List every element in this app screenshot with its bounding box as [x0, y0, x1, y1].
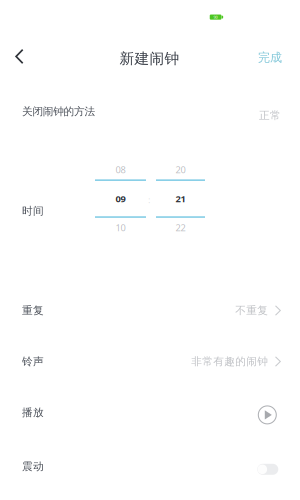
staticText: 20 — [175, 163, 185, 176]
button[interactable]: 关闭闹钟的方法 — [0, 86, 300, 136]
button[interactable]: 震动 — [0, 441, 300, 491]
button[interactable]: 重复 — [0, 285, 300, 335]
staticText: 不重复 — [235, 304, 268, 317]
staticText: : — [148, 193, 151, 206]
staticText: 重复 — [22, 304, 44, 317]
staticText: 震动 — [22, 460, 44, 473]
staticText: 播放 — [22, 406, 44, 419]
staticText: 完成 — [258, 50, 282, 65]
button[interactable]: 返回 — [2, 43, 36, 69]
button[interactable]: 播放 — [0, 387, 300, 437]
staticText: 正常 — [259, 109, 281, 122]
staticText: 10 — [115, 221, 125, 234]
staticText: 新建闹钟 — [119, 49, 179, 67]
staticText: 08 — [115, 163, 125, 176]
button[interactable]: 铃声 — [0, 336, 300, 386]
staticText: 时间 — [22, 204, 44, 218]
staticText: 关闭闹钟的方法 — [22, 105, 95, 118]
staticText: 非常有趣的闹钟 — [191, 355, 268, 368]
staticText: 22 — [175, 221, 185, 234]
staticText: 09 — [115, 192, 125, 205]
staticText: 21 — [175, 192, 185, 205]
button[interactable]: 完成 — [247, 44, 292, 70]
staticText: 90 — [214, 14, 218, 20]
staticText: 铃声 — [22, 355, 44, 368]
